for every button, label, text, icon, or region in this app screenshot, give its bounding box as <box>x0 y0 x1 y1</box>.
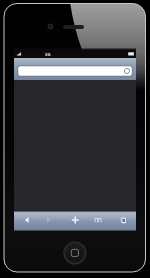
button[interactable]: Home <box>62 240 89 267</box>
button[interactable]: Add <box>64 211 86 230</box>
button[interactable]: Forward <box>39 211 61 230</box>
button[interactable]: Tabs <box>111 211 133 230</box>
staticText: 3G <box>45 52 51 58</box>
button[interactable]: Bookmarks <box>86 211 108 230</box>
button[interactable]: Address bar <box>18 66 132 76</box>
button[interactable]: Back <box>17 211 39 230</box>
